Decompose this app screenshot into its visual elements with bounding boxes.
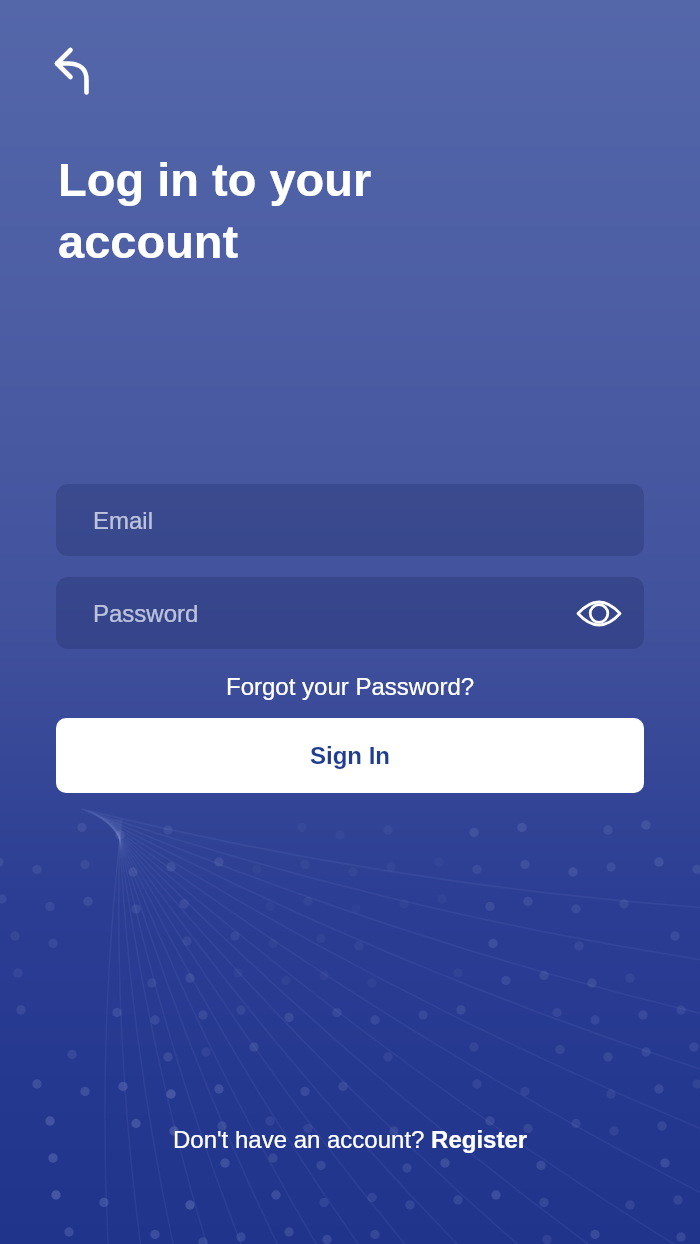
button[interactable]: Forgot your Password? <box>226 673 475 700</box>
button[interactable]: Sign In <box>56 718 644 793</box>
button[interactable]: Don't have an account? Register <box>173 1126 528 1153</box>
staticText: Password <box>93 600 199 627</box>
staticText: Log in to your account <box>58 153 372 268</box>
button[interactable] <box>40 36 104 104</box>
button[interactable]: Email <box>56 484 644 556</box>
button[interactable] <box>572 588 626 639</box>
button[interactable]: Password <box>56 577 644 649</box>
staticText: Sign In <box>310 742 390 769</box>
staticText: Email <box>93 507 154 534</box>
